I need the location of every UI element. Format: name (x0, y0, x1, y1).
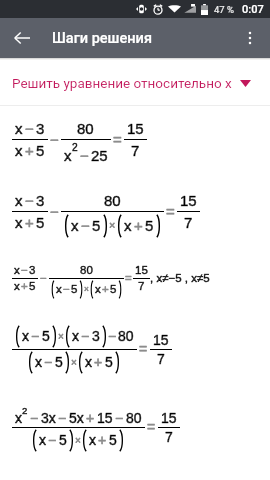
staticText: − (48, 432, 57, 448)
staticText: 80 (118, 328, 134, 344)
staticText: − (58, 410, 67, 426)
staticText: 80 (80, 264, 93, 277)
button[interactable]: Решить уравнение относительно x (0, 60, 270, 105)
staticText: 15 (180, 192, 197, 209)
staticText: x (39, 432, 46, 448)
staticText: x (95, 283, 101, 296)
staticText: = (113, 131, 122, 148)
staticText: 5 (71, 283, 78, 296)
staticText: 5 (59, 432, 67, 448)
staticText: x (15, 192, 23, 209)
staticText: − (48, 432, 57, 448)
button[interactable] (0, 246, 270, 312)
staticText: 5 (36, 214, 45, 231)
button[interactable] (0, 106, 270, 176)
staticText: 7 (138, 280, 145, 293)
staticText: 3 (29, 264, 36, 277)
staticText: − (30, 410, 39, 426)
staticText: 15 (97, 410, 113, 426)
button[interactable]: Back (0, 18, 44, 58)
staticText: − (21, 264, 28, 277)
staticText: 3 (29, 264, 36, 277)
staticText: + (21, 280, 28, 293)
staticText: − (63, 283, 70, 296)
staticText: = (139, 341, 148, 357)
staticText: − (31, 328, 40, 344)
staticText: 5 (92, 217, 101, 234)
staticText: + (86, 410, 95, 426)
staticText: , x≠−5 , x≠5 (150, 272, 210, 285)
staticText: − (58, 410, 67, 426)
staticText: x (22, 328, 29, 344)
staticText: x (14, 280, 20, 293)
staticText: = (147, 419, 156, 435)
button[interactable] (0, 387, 270, 480)
staticText: 3 (36, 192, 45, 209)
staticText: 7 (131, 142, 140, 159)
staticText: + (102, 283, 109, 296)
staticText: x (15, 410, 22, 426)
staticText: 15 (127, 120, 144, 137)
staticText: 3x (41, 410, 56, 426)
staticText: x (15, 214, 23, 231)
staticText: + (134, 217, 143, 234)
staticText: x (15, 214, 23, 231)
staticText: = (166, 203, 175, 220)
staticText: Решить уравнение относительно x (12, 75, 232, 91)
staticText: − (50, 131, 59, 148)
staticText: 5 (110, 283, 117, 296)
staticText: + (25, 142, 34, 159)
staticText: x (89, 432, 96, 448)
staticText: 0:07 (242, 3, 264, 16)
staticText: + (25, 214, 34, 231)
staticText: = (147, 419, 156, 435)
staticText: − (81, 328, 90, 344)
staticText: x (14, 280, 20, 293)
staticText: 5 (109, 432, 117, 448)
staticText: × (58, 331, 64, 342)
staticText: x (35, 354, 42, 370)
staticText: 3 (92, 328, 100, 344)
staticText: 80 (104, 192, 121, 209)
staticText: 5x (69, 410, 84, 426)
staticText: x (95, 283, 101, 296)
staticText: × (109, 219, 116, 231)
staticText: − (80, 147, 89, 164)
button[interactable] (0, 176, 270, 246)
staticText: − (81, 328, 90, 344)
button[interactable] (0, 312, 270, 387)
staticText: x (39, 432, 46, 448)
staticText: 7 (184, 214, 193, 231)
staticText: × (58, 331, 64, 342)
staticText: 7 (165, 429, 173, 445)
staticText: 5 (145, 217, 154, 234)
staticText: x (15, 120, 23, 137)
staticText: 80 (126, 410, 142, 426)
staticText: x (14, 264, 20, 277)
staticText: + (98, 432, 107, 448)
staticText: − (44, 354, 53, 370)
staticText: − (81, 217, 90, 234)
staticText: × (71, 357, 77, 368)
staticText: x (124, 217, 132, 234)
staticText: − (40, 272, 47, 285)
staticText: Шаги решения (52, 30, 152, 47)
staticText: 5 (36, 142, 45, 159)
staticText: x (64, 147, 72, 164)
staticText: − (108, 328, 117, 344)
staticText: x (56, 283, 62, 296)
staticText: 25 (91, 147, 108, 164)
staticText: 2 (22, 405, 28, 416)
button[interactable]: More options (230, 18, 270, 58)
staticText: − (115, 410, 124, 426)
staticText: × (71, 357, 77, 368)
staticText: = (125, 272, 132, 285)
staticText: + (98, 432, 107, 448)
staticText: 80 (118, 328, 134, 344)
staticText: + (94, 354, 103, 370)
staticText: 5 (36, 214, 45, 231)
staticText: − (50, 131, 59, 148)
staticText: x (72, 328, 79, 344)
staticText: = (125, 272, 132, 285)
staticText: 5 (59, 432, 67, 448)
